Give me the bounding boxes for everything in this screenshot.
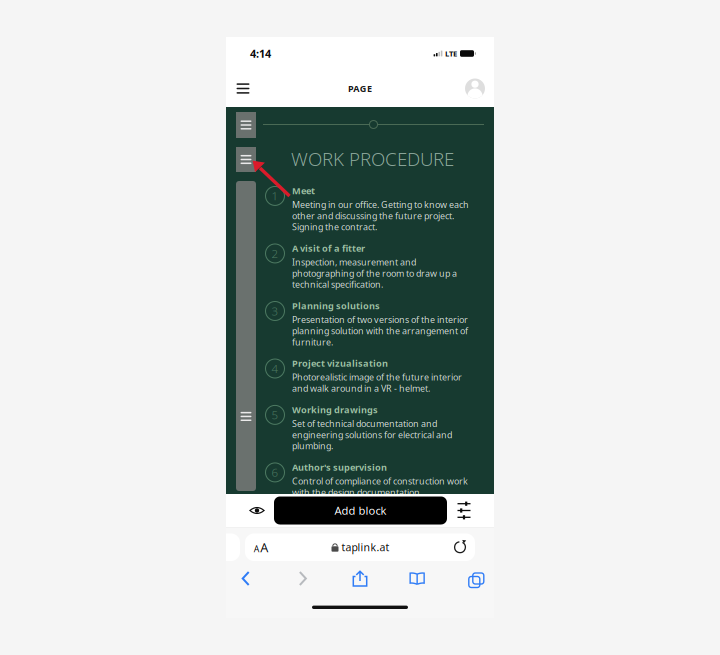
button[interactable]: Add block [274,496,447,524]
staticText: 2 [271,246,278,261]
staticText: Meeting in our office. Getting to know e… [292,198,469,233]
staticText: Photorealistic image of the future inter… [292,371,462,394]
button[interactable]: Account [460,73,490,103]
button[interactable]: Move block [236,112,256,138]
staticText: Control of compliance of construction wo… [292,475,468,498]
button[interactable]: Back [226,564,265,592]
button[interactable]: Menu [231,73,255,103]
button[interactable]: Selected block [236,181,256,491]
staticText: Inspection, measurement and photographin… [292,256,457,290]
staticText: Set of technical documentation and engin… [292,417,452,452]
button[interactable]: Bookmarks [398,564,437,592]
staticText: Working drawings [292,403,378,416]
staticText: 4 [271,361,278,376]
staticText: Planning solutions [292,299,380,312]
staticText: A [260,539,268,556]
staticText: A [254,543,260,555]
button[interactable]: Move section [236,147,256,172]
button[interactable]: Page settings [248,534,274,560]
button[interactable]: Share [340,564,379,592]
staticText: Meet [292,184,315,197]
staticText: WORK PROCEDURE [291,146,454,171]
staticText: Project vizualisation [292,357,388,369]
staticText: 1 [271,188,278,204]
staticText: A visit of a fitter [292,242,365,254]
staticText: Presentation of two versions of the inte… [292,313,468,348]
staticText: PAGE [348,82,372,95]
staticText: 4:14 [250,46,271,61]
button[interactable]: Settings [447,494,481,527]
staticText: 3 [271,303,278,319]
staticText: 5 [271,407,278,423]
staticText: 6 [271,465,278,480]
button[interactable]: Tabs [455,564,494,592]
staticText: Add block [334,503,386,518]
staticText: taplink.at [341,540,389,554]
staticText: Author's supervision [292,461,387,473]
staticText: LTE [445,48,457,59]
button[interactable]: Reload [447,534,473,560]
button[interactable]: Preview [240,494,274,527]
button[interactable]: Forward [283,564,322,592]
